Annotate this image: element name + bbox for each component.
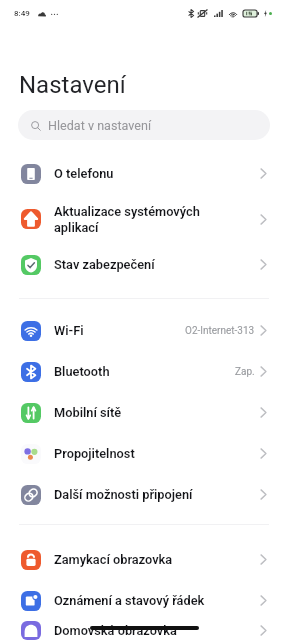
staticText: Nastavení	[19, 71, 126, 99]
staticText: Aktualizace systémových aplikací	[54, 204, 260, 235]
staticText: Zamykací obrazovka	[54, 552, 260, 567]
button[interactable]: Domovská obrazovka	[0, 621, 288, 640]
staticText: 8:49	[14, 9, 30, 18]
button[interactable]: Wi-Fi	[0, 310, 288, 351]
staticText: Hledat v nastavení	[48, 118, 152, 133]
button[interactable]: Stav zabezpečení	[0, 244, 288, 285]
staticText: Stav zabezpečení	[54, 257, 260, 272]
button[interactable]: Aktualizace systémových aplikací	[0, 194, 288, 244]
staticText: O2-Internet-313	[185, 325, 255, 337]
staticText: Mobilní sítě	[54, 405, 260, 420]
staticText: Propojitelnost	[54, 446, 260, 461]
staticText: Oznámení a stavový řádek	[54, 593, 260, 608]
button[interactable]: Mobilní sítě	[0, 392, 288, 433]
staticText: Bluetooth	[54, 364, 235, 379]
staticText: Zap.	[235, 366, 255, 378]
button[interactable]: Zamykací obrazovka	[0, 539, 288, 580]
button[interactable]: Další možnosti připojení	[0, 474, 288, 515]
button[interactable]: Bluetooth	[0, 351, 288, 392]
staticText: O telefonu	[54, 166, 260, 181]
button[interactable]: O telefonu	[0, 153, 288, 194]
button[interactable]: Oznámení a stavový řádek	[0, 580, 288, 621]
button[interactable]: Hledat v nastavení	[18, 110, 270, 140]
staticText: Další možnosti připojení	[54, 487, 260, 502]
button[interactable]: Propojitelnost	[0, 433, 288, 474]
staticText: Domovská obrazovka	[54, 623, 260, 638]
staticText: Wi-Fi	[54, 323, 185, 338]
